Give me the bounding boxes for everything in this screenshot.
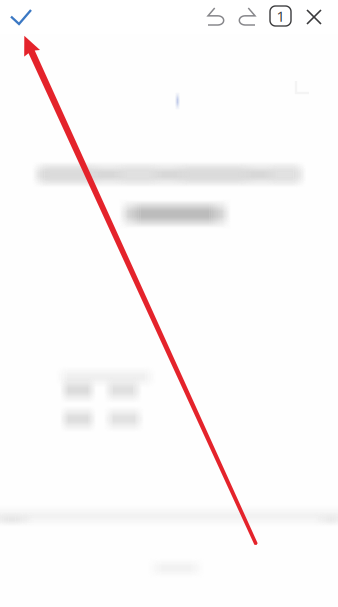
button[interactable]: Undo xyxy=(199,0,233,33)
button[interactable]: 1 xyxy=(262,0,299,32)
staticText: 1 xyxy=(276,6,284,26)
button[interactable]: Done xyxy=(0,0,42,34)
button[interactable]: Close xyxy=(297,0,331,34)
button[interactable]: Redo xyxy=(230,0,264,33)
